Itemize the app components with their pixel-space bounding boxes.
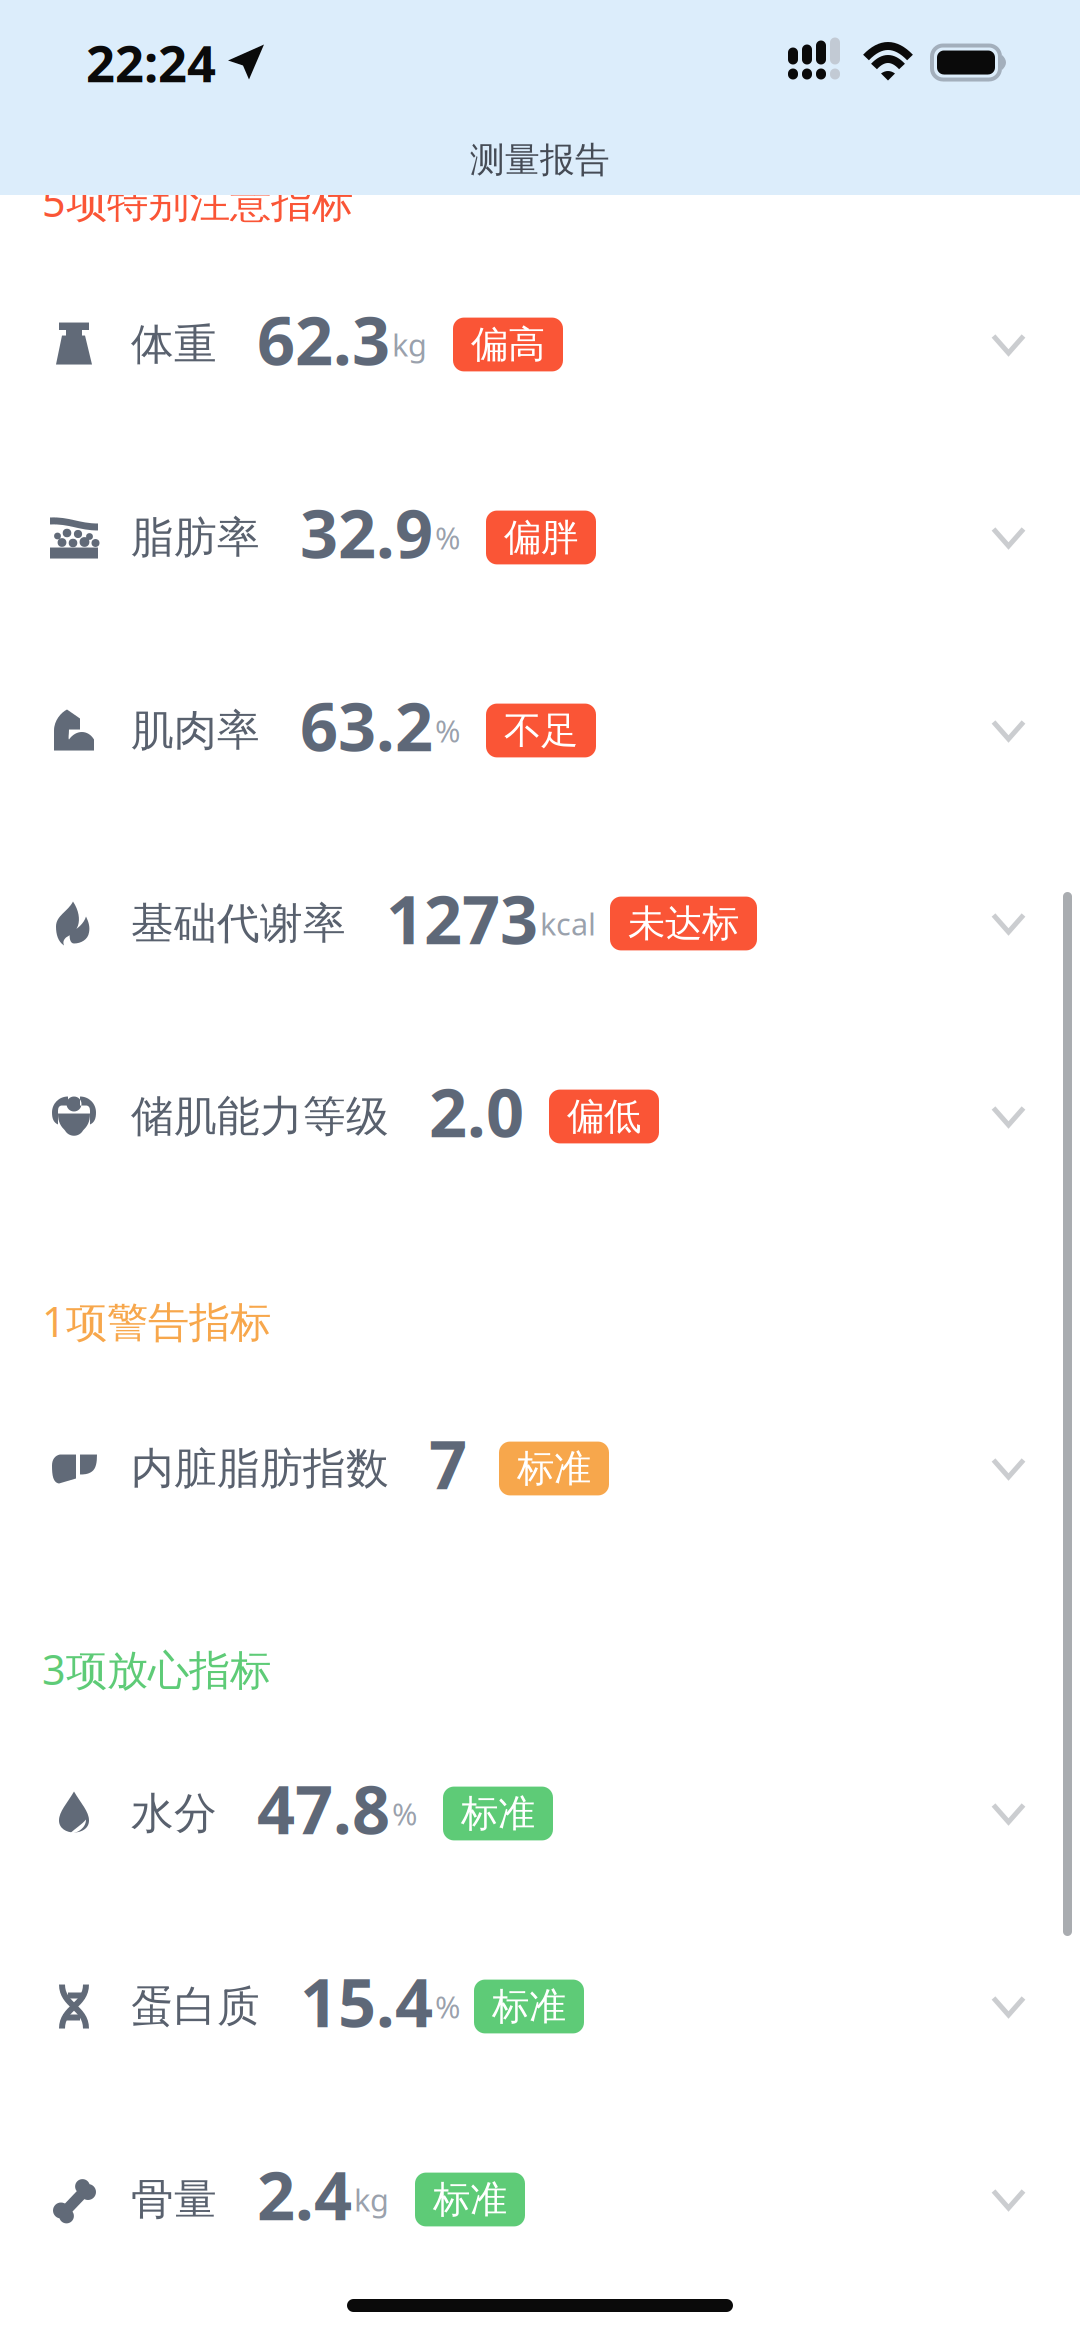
staticText: 骨量 xyxy=(131,2173,217,2226)
staticText: 基础代谢率 xyxy=(131,897,346,950)
staticText: 储肌能力等级 xyxy=(131,1090,389,1143)
staticText: 63.2 xyxy=(300,681,433,770)
staticText: 标准 xyxy=(461,1791,535,1836)
staticText: 3项放心指标 xyxy=(42,1642,271,1696)
staticText: 5项特别注意指标 xyxy=(42,174,353,228)
button[interactable]: 蛋白质 xyxy=(0,1910,1080,2103)
staticText: 内脏脂肪指数 xyxy=(131,1442,389,1495)
staticText: 2.4 xyxy=(257,2150,352,2239)
button[interactable]: 肌肉率 xyxy=(0,634,1080,827)
staticText: 水分 xyxy=(131,1787,217,1840)
staticText: % xyxy=(435,710,460,751)
staticText: 标准 xyxy=(517,1446,591,1491)
staticText: 1项警告指标 xyxy=(42,1294,271,1348)
button[interactable]: 骨量 xyxy=(0,2103,1080,2296)
staticText: 标准 xyxy=(433,2177,507,2222)
staticText: 脂肪率 xyxy=(131,511,260,564)
staticText: 蛋白质 xyxy=(131,1980,260,2033)
staticText: 2.0 xyxy=(429,1067,524,1156)
staticText: 62.3 xyxy=(257,295,390,384)
staticText: 偏低 xyxy=(567,1094,641,1139)
staticText: 32.9 xyxy=(300,488,433,577)
staticText: % xyxy=(392,1793,417,1834)
staticText: 体重 xyxy=(131,318,217,371)
staticText: 7 xyxy=(429,1419,467,1508)
staticText: 偏胖 xyxy=(504,515,578,560)
staticText: 肌肉率 xyxy=(131,704,260,757)
staticText: 1273 xyxy=(386,874,538,963)
staticText: 偏高 xyxy=(471,322,545,367)
staticText: 标准 xyxy=(492,1984,566,2029)
staticText: 测量报告 xyxy=(470,139,610,181)
button[interactable]: 内脏脂肪指数 xyxy=(0,1372,1080,1565)
button[interactable]: 储肌能力等级 xyxy=(0,1020,1080,1213)
button[interactable]: 基础代谢率 xyxy=(0,827,1080,1020)
staticText: 22:24 xyxy=(86,29,216,96)
staticText: 15.4 xyxy=(300,1957,433,2046)
staticText: 未达标 xyxy=(628,901,739,946)
button[interactable]: 体重 xyxy=(0,248,1080,441)
staticText: kcal xyxy=(540,903,596,944)
staticText: % xyxy=(435,517,460,558)
staticText: 不足 xyxy=(504,708,578,753)
staticText: % xyxy=(435,1986,460,2027)
button[interactable]: 水分 xyxy=(0,1717,1080,1910)
staticText: kg xyxy=(392,324,427,365)
staticText: kg xyxy=(354,2179,389,2220)
button[interactable]: 脂肪率 xyxy=(0,441,1080,634)
staticText: 47.8 xyxy=(257,1764,390,1853)
